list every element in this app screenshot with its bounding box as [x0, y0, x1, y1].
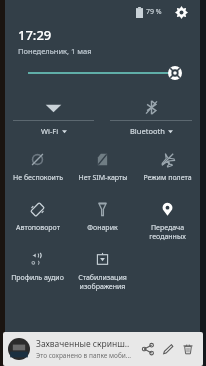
button[interactable]: Профиль аудио [5, 252, 70, 283]
button[interactable]: Share [138, 339, 158, 359]
staticText: Это сохранено в папке моби... [36, 351, 132, 360]
button[interactable]: Передача геоданных [135, 202, 200, 241]
button[interactable]: Фонарик [70, 202, 135, 233]
staticText: Захваченные скринш.. [36, 338, 130, 350]
staticText: Автоповорот [16, 223, 60, 233]
button[interactable]: Settings [172, 3, 190, 21]
staticText: Профиль аудио [11, 273, 64, 283]
button[interactable]: Delete [178, 339, 198, 359]
button[interactable]: Нет SIM-карты [70, 152, 135, 183]
staticText: 17:29 [18, 26, 52, 44]
button[interactable]: Brightness [5, 56, 200, 90]
button[interactable]: Захваченные скринш.. [3, 332, 203, 366]
staticText: Bluetooth [130, 126, 165, 136]
button[interactable]: Bluetooth [102, 96, 200, 142]
staticText: Не беспокоить [13, 173, 63, 183]
staticText: 79 % [146, 7, 162, 17]
staticText: Стабилизация изображения [78, 273, 127, 291]
button[interactable]: Edit [158, 339, 178, 359]
staticText: Понедельник, 1 мая [18, 46, 92, 56]
staticText: Режим полета [143, 173, 192, 183]
button[interactable]: Стабилизация изображения [70, 252, 135, 291]
staticText: Передача геоданных [137, 223, 198, 241]
button[interactable]: Не беспокоить [5, 152, 70, 183]
staticText: Фонарик [87, 223, 118, 233]
button[interactable]: Режим полета [135, 152, 200, 183]
button[interactable]: Автоповорот [5, 202, 70, 233]
button[interactable]: Wi-Fi [5, 96, 102, 142]
staticText: Wi-Fi [41, 126, 59, 136]
staticText: Нет SIM-карты [78, 173, 128, 183]
